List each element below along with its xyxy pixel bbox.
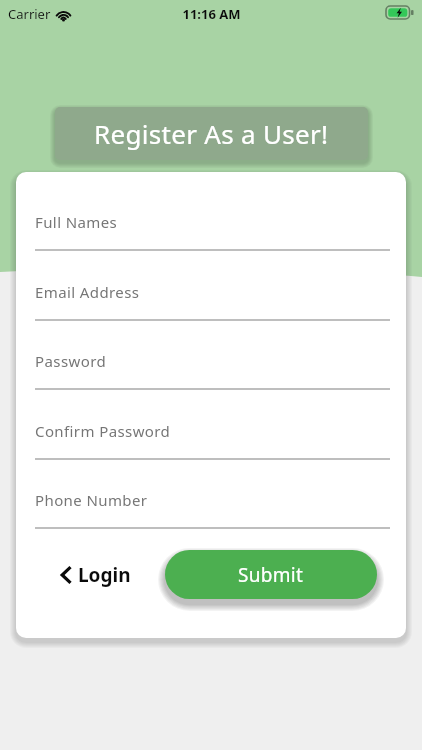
other: Battery charging [386,6,414,19]
button[interactable]: Phone Number [35,490,390,538]
staticText: Carrier [8,5,51,23]
button[interactable]: Password [35,351,390,399]
staticText: Register As a User! [94,116,329,151]
button[interactable]: Register As a User! [55,107,368,160]
staticText: Email Address [35,282,140,302]
staticText: Confirm Password [35,421,171,441]
staticText: 11:16 AM [182,5,241,23]
staticText: Submit [238,562,304,588]
button[interactable]: Submit [165,550,377,599]
button[interactable]: Full Names [35,212,390,260]
staticText: Phone Number [35,490,148,510]
staticText: Login [78,562,131,588]
button[interactable]: Confirm Password [35,421,390,469]
staticText: Full Names [35,212,118,232]
staticText: Password [35,351,107,371]
button[interactable]: Login [60,556,131,594]
button[interactable]: Email Address [35,282,390,330]
